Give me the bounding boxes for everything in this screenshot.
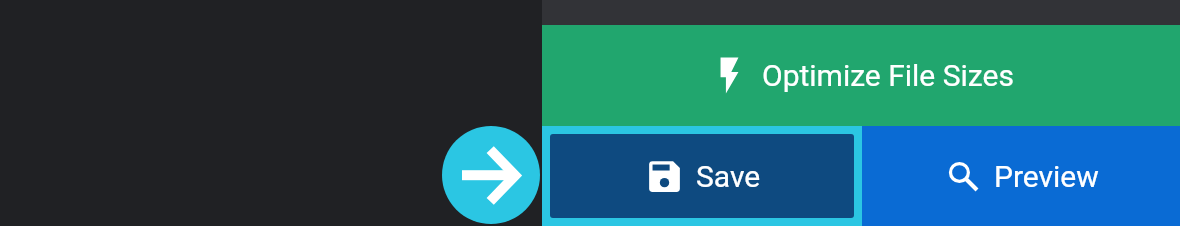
button[interactable]: Preview (862, 126, 1180, 226)
button[interactable]: Save (550, 134, 854, 218)
button[interactable]: Optimize File Sizes (542, 25, 1180, 126)
staticText: Save (696, 159, 761, 194)
button[interactable]: Next (442, 126, 540, 224)
staticText: Preview (994, 159, 1099, 194)
staticText: Optimize File Sizes (762, 58, 1014, 93)
